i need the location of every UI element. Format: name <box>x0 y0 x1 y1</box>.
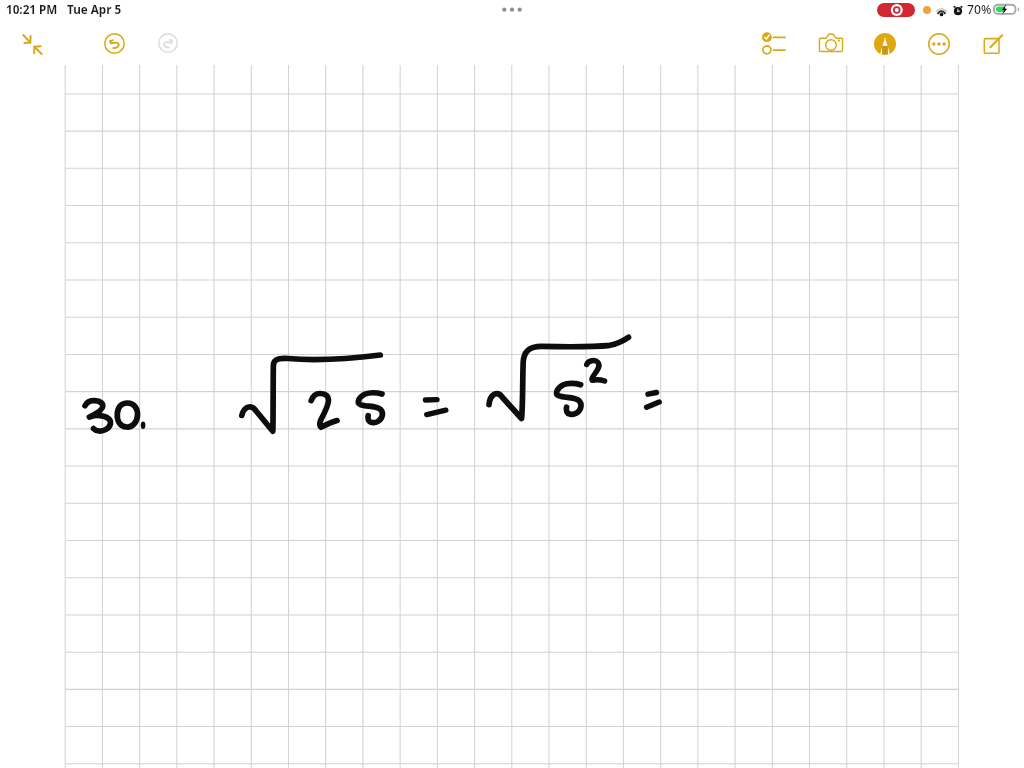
button[interactable]: Compose <box>976 27 1010 61</box>
staticText: 10:21 PM <box>6 1 58 17</box>
button[interactable]: Exit full screen <box>16 29 46 59</box>
button[interactable]: Checklist <box>756 27 790 61</box>
button[interactable]: Camera <box>813 27 847 61</box>
staticText: 70% <box>967 1 992 18</box>
button[interactable]: Undo <box>99 29 129 59</box>
button[interactable]: Redo <box>151 29 181 59</box>
button[interactable]: More options <box>923 27 957 61</box>
button[interactable]: Pen tool <box>868 27 902 61</box>
staticText: Tue Apr 5 <box>67 1 122 17</box>
